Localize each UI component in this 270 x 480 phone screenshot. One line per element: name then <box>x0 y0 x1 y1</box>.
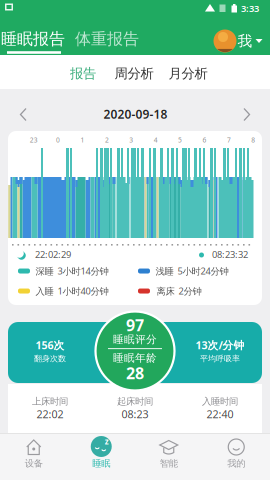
staticText: 睡眠 <box>92 458 110 469</box>
staticText: 平均呼吸率 <box>200 354 240 363</box>
staticText: 体重报告 <box>75 29 139 49</box>
staticText: 离床 2分钟 <box>156 285 201 297</box>
staticText: 22:02 <box>36 407 63 421</box>
staticText: 6 <box>202 136 206 144</box>
staticText: 08:23:32 <box>212 248 248 261</box>
staticText: 7 <box>227 136 231 144</box>
staticText: 28 <box>126 362 144 384</box>
button[interactable]: 睡眠 <box>68 433 135 480</box>
button[interactable]: 睡眠报告 <box>0 26 68 52</box>
button[interactable]: 月分析 <box>163 58 213 88</box>
staticText: 5 <box>178 136 182 144</box>
button[interactable]: 报告 <box>61 58 105 88</box>
staticText: 3 <box>129 136 133 144</box>
staticText: 入睡 1小时40分钟 <box>35 285 108 297</box>
staticText: 周分析 <box>114 65 153 82</box>
staticText: 设备 <box>25 458 43 469</box>
staticText: 上床时间 <box>32 396 68 407</box>
staticText: 97 <box>126 314 144 336</box>
staticText: 入睡时间 <box>202 396 238 407</box>
staticText: 月分析 <box>168 65 207 82</box>
staticText: 08:23 <box>121 407 148 421</box>
staticText: 我的 <box>227 458 245 469</box>
button[interactable]: 头像 <box>213 29 236 52</box>
staticText: 0 <box>56 136 60 144</box>
button[interactable]: 我的 <box>203 433 270 480</box>
staticText: 报告 <box>70 65 96 82</box>
button[interactable]: 体重报告 <box>72 26 142 52</box>
staticText: 2 <box>105 136 109 144</box>
button[interactable]: 设备 <box>0 433 67 480</box>
staticText: 23 <box>30 136 38 144</box>
staticText: 3:33 <box>241 2 259 15</box>
staticText: z <box>105 436 109 447</box>
staticText: 22:40 <box>206 407 233 421</box>
staticText: 4 <box>154 136 158 144</box>
button[interactable]: 智能 <box>135 433 202 480</box>
staticText: 浅睡 5小时24分钟 <box>155 265 228 277</box>
staticText: 13次/分钟 <box>195 338 244 352</box>
staticText: 1 <box>80 136 84 144</box>
staticText: 起床时间 <box>117 396 153 407</box>
staticText: 22:02:29 <box>35 248 71 261</box>
staticText: 我 <box>237 32 252 50</box>
staticText: 156次 <box>35 338 64 352</box>
staticText: 8 <box>251 136 255 144</box>
staticText: 2020-09-18 <box>103 106 167 122</box>
staticText: 翻身次数 <box>34 354 66 363</box>
button[interactable]: 前一天 <box>13 104 33 124</box>
staticText: 睡眠报告 <box>1 29 65 49</box>
button[interactable]: 周分析 <box>109 58 159 88</box>
button[interactable]: 后一天 <box>236 104 256 124</box>
staticText: 睡眠年龄 <box>113 351 157 364</box>
staticText: 深睡 3小时14分钟 <box>35 265 108 277</box>
staticText: 睡眠评分 <box>113 333 157 346</box>
staticText: 智能 <box>160 458 178 469</box>
button[interactable]: 我 <box>237 32 262 50</box>
